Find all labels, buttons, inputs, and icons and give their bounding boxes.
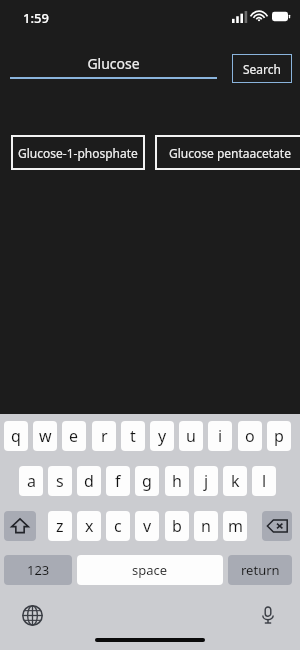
button[interactable]: j (194, 466, 218, 496)
staticText: e (69, 425, 79, 447)
button[interactable]: Glucose-1-phosphate (11, 135, 145, 170)
button[interactable]: d (77, 466, 101, 496)
button[interactable]: g (135, 466, 159, 496)
staticText: i (218, 425, 223, 447)
staticText: Glucose-1-phosphate (18, 145, 138, 161)
button[interactable]: return (228, 555, 292, 585)
staticText: y (158, 425, 167, 447)
button[interactable]: Search (232, 54, 292, 83)
button[interactable]: v (135, 511, 159, 541)
staticText: k (231, 470, 240, 492)
button[interactable]: Dictate (252, 599, 284, 631)
staticText: n (201, 515, 211, 537)
staticText: b (172, 515, 182, 537)
button[interactable]: k (223, 466, 247, 496)
staticText: p (274, 425, 284, 447)
staticText: 123 (27, 561, 50, 579)
staticText: return (241, 561, 280, 579)
button[interactable]: x (77, 511, 101, 541)
button[interactable]: c (106, 511, 130, 541)
button[interactable]: Change keyboard language (16, 599, 48, 631)
button[interactable]: u (179, 421, 203, 451)
staticText: m (228, 515, 243, 537)
staticText: s (56, 470, 64, 492)
staticText: r (101, 425, 108, 447)
staticText: l (262, 470, 267, 492)
button[interactable]: e (62, 421, 86, 451)
staticText: d (84, 470, 94, 492)
button[interactable]: l (252, 466, 276, 496)
staticText: q (11, 425, 21, 447)
button[interactable]: m (223, 511, 247, 541)
button[interactable]: h (165, 466, 189, 496)
button[interactable]: z (48, 511, 72, 541)
staticText: j (204, 470, 209, 492)
button[interactable]: f (106, 466, 130, 496)
button[interactable]: s (48, 466, 72, 496)
button[interactable]: n (194, 511, 218, 541)
staticText: Glucose (87, 54, 140, 73)
staticText: 1:59 (23, 9, 49, 27)
button[interactable]: q (4, 421, 28, 451)
button[interactable]: o (238, 421, 262, 451)
staticText: f (115, 470, 121, 492)
button[interactable]: 123 (4, 555, 72, 585)
staticText: Glucose pentaacetate (169, 145, 291, 161)
staticText: o (245, 425, 255, 447)
button[interactable]: p (267, 421, 291, 451)
button[interactable]: space (77, 555, 223, 585)
button[interactable]: Backspace (262, 511, 292, 541)
staticText: Search (243, 61, 281, 77)
button[interactable]: r (92, 421, 116, 451)
staticText: v (143, 515, 152, 537)
staticText: c (114, 515, 122, 537)
button[interactable]: w (33, 421, 57, 451)
staticText: a (27, 470, 36, 492)
button[interactable]: Shift (4, 511, 36, 541)
staticText: g (142, 470, 152, 492)
staticText: u (186, 425, 196, 447)
button[interactable]: i (208, 421, 232, 451)
staticText: space (132, 561, 168, 579)
staticText: w (39, 425, 52, 447)
button[interactable]: y (150, 421, 174, 451)
button[interactable]: a (19, 466, 43, 496)
button[interactable]: Glucose (10, 52, 217, 79)
button[interactable]: t (121, 421, 145, 451)
staticText: h (172, 470, 182, 492)
staticText: x (85, 515, 94, 537)
staticText: z (56, 515, 64, 537)
staticText: t (130, 425, 136, 447)
button[interactable]: b (165, 511, 189, 541)
button[interactable]: Glucose pentaacetate (155, 135, 300, 170)
